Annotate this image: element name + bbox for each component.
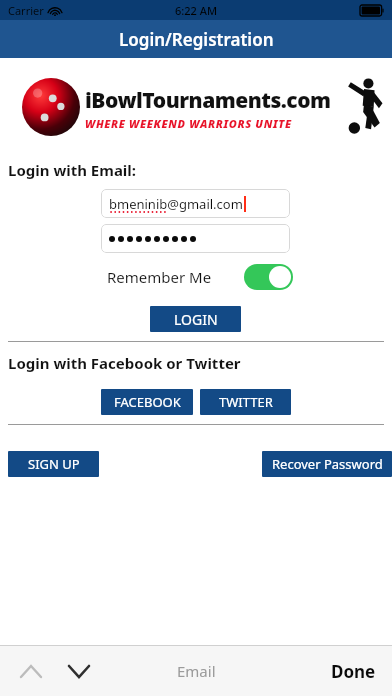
staticText: LOGIN — [174, 310, 218, 329]
button[interactable] — [101, 224, 290, 253]
staticText: iBowlTournaments.com — [85, 86, 331, 115]
staticText: Email — [177, 661, 216, 681]
staticText: Login with Facebook or Twitter — [8, 353, 241, 373]
button[interactable]: bmeninib@gmail.com — [101, 189, 290, 218]
button[interactable]: FACEBOOK — [101, 389, 193, 415]
staticText: Carrier — [8, 3, 44, 18]
staticText: FACEBOOK — [114, 393, 181, 411]
button[interactable]: Next field — [62, 654, 96, 688]
button[interactable]: LOGIN — [150, 306, 241, 332]
staticText: Done — [331, 660, 376, 683]
staticText: bmeninib@gmail.com — [109, 195, 243, 213]
button[interactable]: Done — [325, 654, 382, 689]
staticText: Login with Email: — [8, 160, 137, 180]
staticText: Remember Me — [107, 267, 212, 287]
staticText: Login/Registration — [119, 28, 274, 51]
staticText: SIGN UP — [28, 455, 80, 473]
button[interactable]: Remember Me toggle — [244, 264, 293, 290]
staticText: WHERE WEEKEND WARRIORS UNITE — [85, 116, 292, 131]
button[interactable]: Previous field — [14, 654, 48, 688]
button[interactable]: SIGN UP — [8, 451, 99, 477]
staticText: 6:22 AM — [175, 3, 218, 18]
staticText: TWITTER — [219, 393, 273, 411]
button[interactable]: TWITTER — [200, 389, 291, 415]
staticText: Recover Password — [272, 455, 383, 473]
button[interactable]: Recover Password — [262, 451, 392, 477]
